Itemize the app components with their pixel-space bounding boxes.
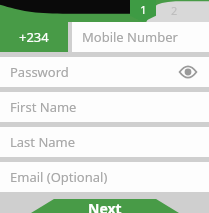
staticText: +234 xyxy=(19,28,49,46)
staticText: Email (Optional) xyxy=(10,168,108,186)
staticText: 2 xyxy=(171,3,178,18)
staticText: 1 xyxy=(140,2,147,17)
button[interactable]: Mobile Number xyxy=(72,22,209,52)
button[interactable]: +234 xyxy=(0,22,68,52)
staticText: Next xyxy=(88,199,122,213)
button[interactable]: Last Name xyxy=(0,127,209,157)
button[interactable]: Step 2 xyxy=(163,0,185,20)
button[interactable]: Password xyxy=(0,57,209,87)
staticText: Password xyxy=(10,63,69,81)
button[interactable]: Show password xyxy=(177,61,199,83)
staticText: First Name xyxy=(10,98,77,116)
button[interactable]: Email (Optional) xyxy=(0,162,209,192)
button[interactable]: First Name xyxy=(0,92,209,122)
staticText: Last Name xyxy=(10,133,76,151)
button[interactable]: Step 1 xyxy=(130,0,156,22)
button[interactable]: Next xyxy=(31,199,179,213)
staticText: Mobile Number xyxy=(82,28,178,46)
